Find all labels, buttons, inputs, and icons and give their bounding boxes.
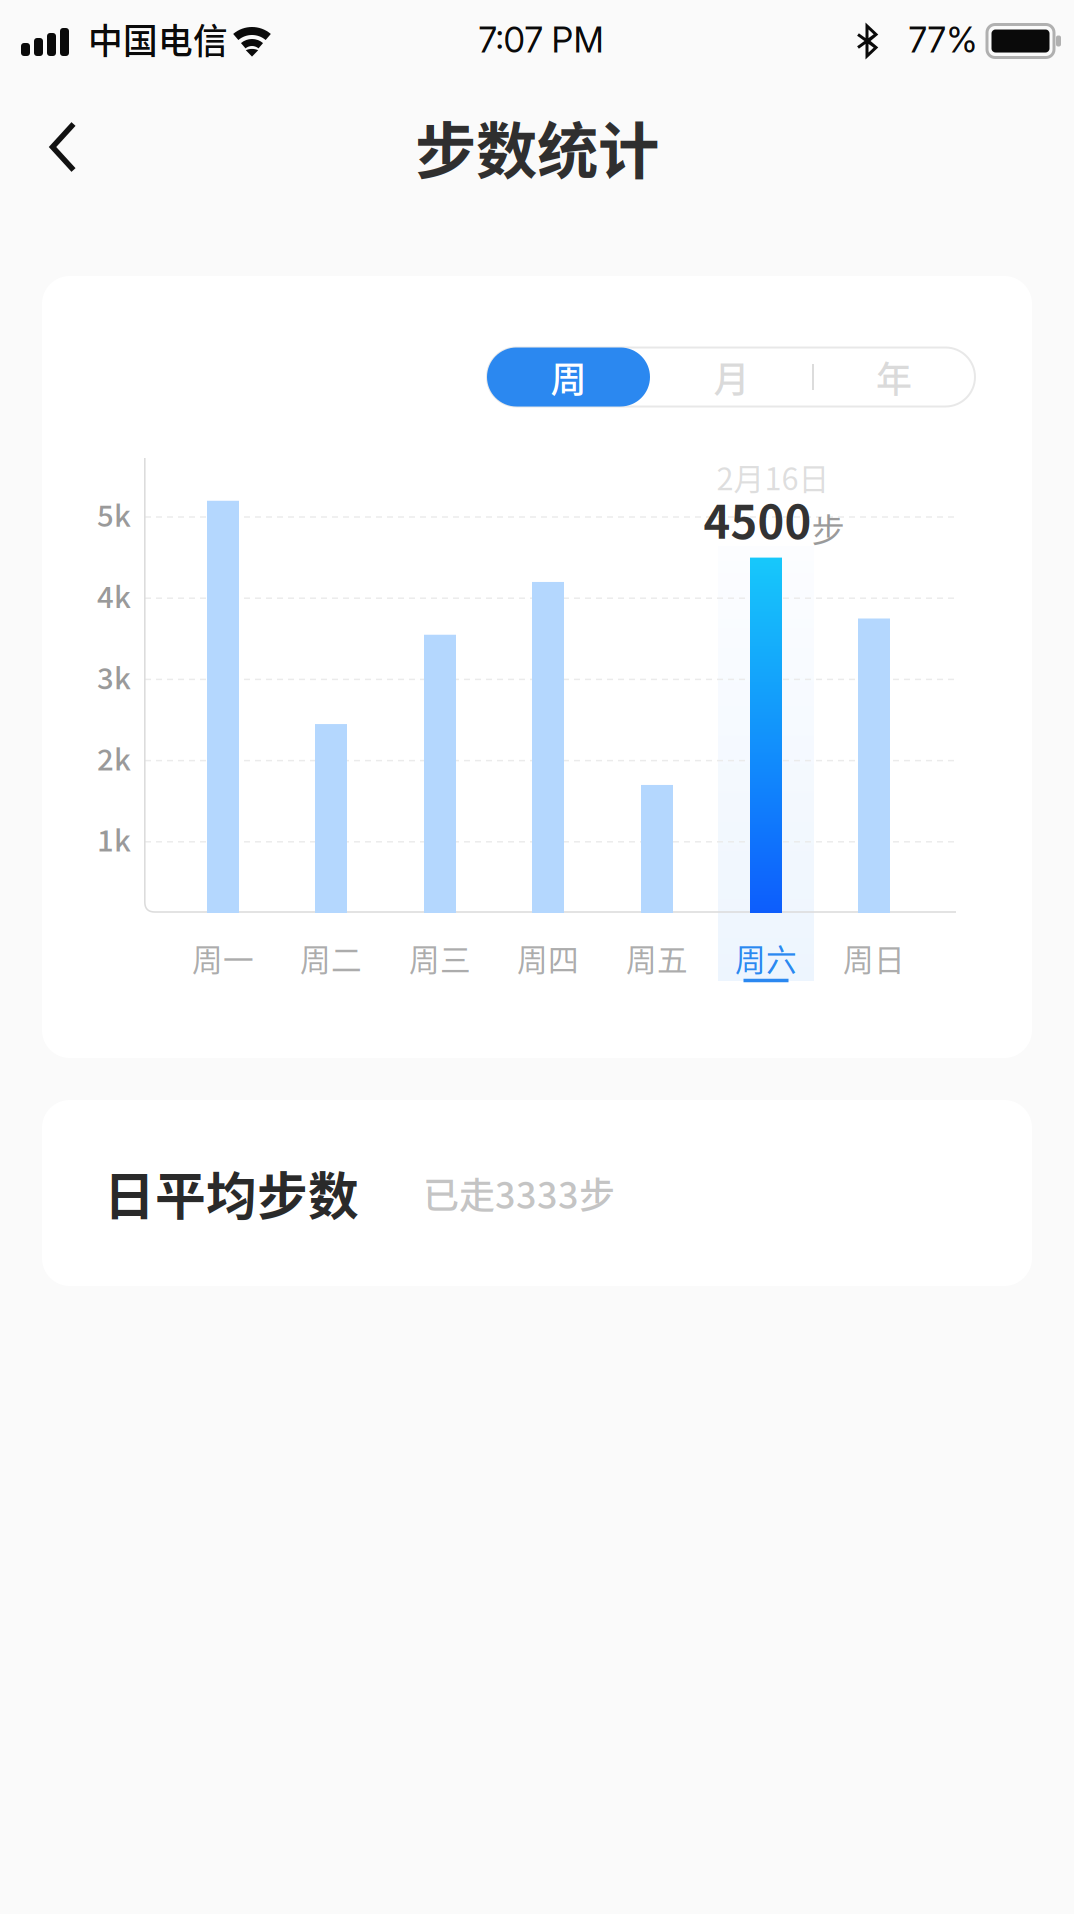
staticText: 周二 — [300, 936, 362, 980]
button[interactable]: 周四 — [500, 913, 596, 1003]
staticText: 日平均步数 — [104, 1156, 359, 1230]
staticText: 7:07 PM — [478, 19, 603, 61]
staticText: 月 — [713, 351, 749, 403]
staticText: 中国电信 — [88, 14, 228, 64]
staticText: 2月16日 — [716, 455, 829, 499]
staticText: 5k — [97, 493, 131, 535]
staticText: 4500 — [703, 486, 811, 552]
staticText: 周三 — [409, 936, 471, 980]
staticText: 周六 — [735, 936, 797, 980]
button[interactable]: 周二 — [283, 913, 379, 1003]
button[interactable]: 周一 — [175, 913, 271, 1003]
button[interactable]: 周三 — [392, 913, 488, 1003]
staticText: 周四 — [517, 936, 579, 980]
staticText: 77% — [908, 19, 977, 61]
staticText: 4k — [97, 574, 131, 616]
staticText: 2k — [97, 736, 131, 779]
button[interactable]: 周五 — [609, 913, 705, 1003]
button[interactable]: 周日 — [826, 913, 922, 1003]
staticText: 周日 — [843, 936, 905, 980]
staticText: 步数统计 — [415, 103, 659, 191]
button[interactable]: 周六 — [718, 913, 814, 1003]
staticText: 周五 — [626, 936, 688, 980]
staticText: 周一 — [192, 936, 254, 980]
staticText: 年 — [876, 351, 912, 403]
button[interactable]: 周 — [487, 347, 650, 406]
staticText: 周 — [550, 351, 586, 403]
staticText: 已走3333步 — [423, 1167, 615, 1219]
staticText: 1k — [97, 818, 131, 860]
staticText: 3k — [97, 655, 131, 698]
button[interactable]: 年 — [812, 347, 975, 406]
button[interactable]: 返回 — [20, 92, 105, 202]
button[interactable]: 月 — [650, 347, 813, 406]
button[interactable]: 日平均步数 — [42, 1100, 1032, 1286]
staticText: 步 — [811, 504, 844, 552]
